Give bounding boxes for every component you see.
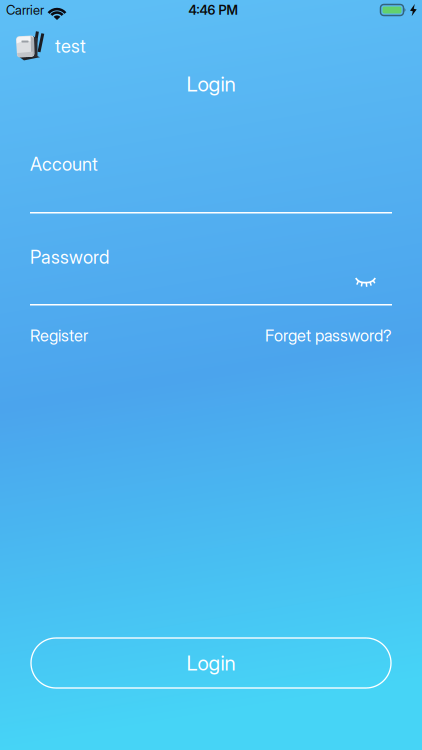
staticText: Password [30, 246, 109, 268]
staticText: 4:46 PM [188, 2, 237, 18]
staticText: Login [186, 651, 235, 675]
staticText: Forget password? [265, 326, 392, 345]
button[interactable]: Login [31, 638, 391, 688]
button[interactable]: Password [30, 246, 392, 305]
button[interactable]: Forget password? [265, 326, 392, 345]
button[interactable]: Account [30, 153, 392, 213]
button[interactable]: Register [30, 326, 88, 345]
staticText: Carrier [6, 2, 44, 18]
staticText: Login [186, 71, 235, 96]
staticText: Account [30, 153, 98, 175]
staticText: test [55, 35, 86, 57]
button[interactable]: test [13, 30, 86, 62]
button[interactable] [355, 277, 376, 288]
staticText: Register [30, 326, 88, 345]
